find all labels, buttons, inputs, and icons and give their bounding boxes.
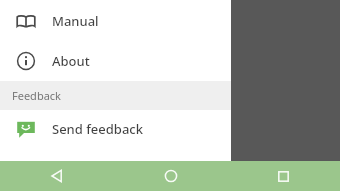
button[interactable]: Send feedback [0, 110, 231, 148]
button[interactable]: Recents [227, 161, 340, 191]
staticText: Feedback [12, 88, 61, 103]
staticText: Send feedback [52, 120, 143, 138]
button[interactable]: About [0, 41, 231, 81]
button[interactable]: Manual [0, 0, 231, 41]
staticText: Manual [52, 12, 99, 30]
button[interactable]: Home [114, 161, 227, 191]
staticText: About [52, 52, 90, 70]
button[interactable]: Back [0, 161, 114, 191]
